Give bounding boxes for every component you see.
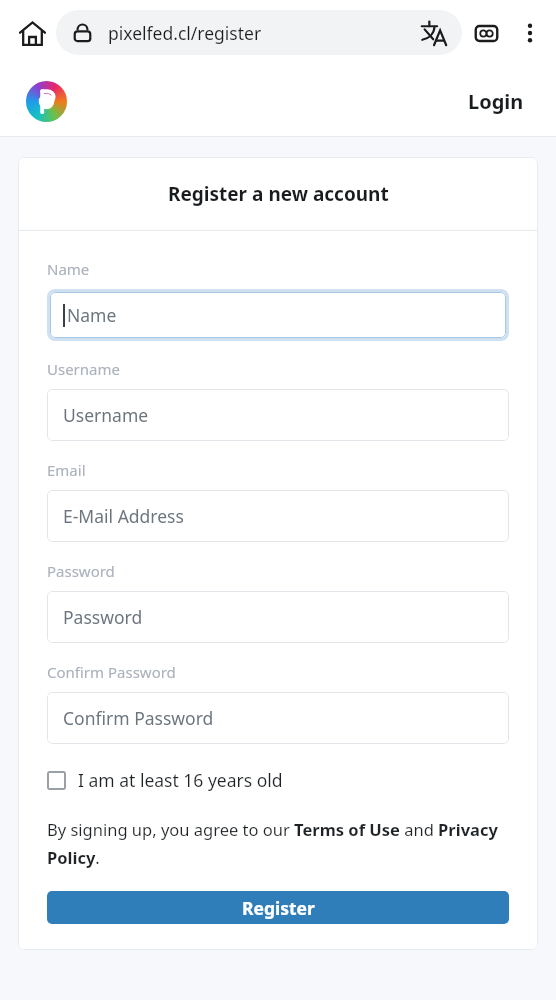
button[interactable]: Home <box>8 9 56 57</box>
button[interactable]: Pixelfed home <box>24 79 68 123</box>
staticText: pixelfed.cl/register <box>108 21 262 45</box>
staticText: Password <box>47 561 115 581</box>
staticText: Confirm Password <box>47 662 176 682</box>
staticText: I am at least 16 years old <box>78 768 283 792</box>
staticText: Name <box>47 259 90 279</box>
button[interactable]: More options <box>510 13 550 53</box>
button[interactable]: By signing up, you agree to our Terms of… <box>47 818 509 869</box>
button[interactable]: Register <box>47 891 509 924</box>
staticText: Login <box>468 88 524 115</box>
staticText: Username <box>47 359 120 379</box>
staticText: Email <box>47 460 86 480</box>
button[interactable]: Tabs <box>462 9 510 57</box>
button[interactable]: Password <box>47 591 509 643</box>
button[interactable]: pixelfed.cl/register <box>56 10 462 55</box>
staticText: E-Mail Address <box>63 504 184 528</box>
staticText: Name <box>67 303 117 327</box>
button[interactable]: Username <box>47 389 509 441</box>
button[interactable]: E-Mail Address <box>47 490 509 542</box>
staticText: Register <box>242 896 315 920</box>
button[interactable]: Translate page <box>420 19 448 47</box>
button[interactable]: Confirm Password <box>47 692 509 744</box>
staticText: Username <box>63 403 149 427</box>
staticText: Confirm Password <box>63 706 214 730</box>
button[interactable]: Name <box>47 289 509 341</box>
staticText: Register a new account <box>168 181 389 207</box>
button[interactable]: I am at least 16 years old <box>47 768 509 792</box>
button[interactable]: Login <box>460 78 532 125</box>
staticText: Password <box>63 605 143 629</box>
